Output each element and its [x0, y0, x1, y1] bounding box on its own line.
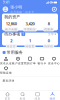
staticText: 可用积分: [24, 28, 36, 31]
button[interactable]: 账户设置: [12, 56, 24, 65]
button[interactable]: 消息: [30, 92, 45, 100]
button[interactable]: Settings: [51, 6, 57, 12]
staticText: 发现: [19, 97, 25, 100]
button[interactable]: 安全中心: [48, 56, 60, 65]
staticText: 账户余额: [5, 28, 17, 31]
button[interactable]: 首页: [0, 92, 15, 100]
staticText: 优惠券: [44, 28, 53, 31]
button[interactable]: 12,860: [2, 21, 21, 31]
staticText: 8: [48, 21, 50, 26]
button[interactable]: 全部: [48, 32, 56, 36]
staticText: 待评价: [44, 45, 53, 48]
staticText: 安全中心: [48, 62, 60, 65]
staticText: 3: [22, 32, 24, 36]
button[interactable]: 3,420: [21, 21, 39, 31]
staticText: 消息: [34, 97, 40, 100]
staticText: 3,420: [25, 21, 34, 26]
staticText: 全部: [48, 32, 54, 36]
button[interactable]: 0: [39, 38, 58, 48]
staticText: 张小明: [10, 5, 22, 9]
button[interactable]: 实名认证: [0, 56, 12, 65]
staticText: 0: [48, 38, 50, 43]
staticText: 我的订单: [24, 62, 36, 65]
staticText: 实名认证: [0, 62, 12, 65]
staticText: 最近活动: [3, 79, 15, 82]
button[interactable]: 2: [2, 38, 21, 48]
staticText: 银行卡: [37, 62, 46, 65]
staticText: 帮助反馈: [0, 71, 12, 75]
staticText: 12,860: [6, 21, 17, 26]
button[interactable]: 帮助反馈: [0, 66, 12, 75]
staticText: 常用服务: [7, 50, 23, 55]
button[interactable]: 8: [39, 21, 58, 31]
staticText: 1: [29, 38, 31, 43]
staticText: 待办事项: [4, 32, 20, 36]
button[interactable]: 我的订单: [24, 56, 36, 65]
staticText: 2: [10, 38, 12, 43]
staticText: 待支付: [7, 45, 16, 48]
button[interactable]: 1: [21, 38, 39, 48]
staticText: 会员等级 · 白金卡: [10, 10, 34, 14]
staticText: 我的: [49, 97, 55, 100]
staticText: 待收货: [25, 45, 34, 48]
staticText: 我的资产: [4, 14, 20, 19]
staticText: 首页: [4, 97, 10, 100]
button[interactable]: 银行卡: [36, 56, 48, 65]
button[interactable]: 我的: [45, 92, 60, 100]
button[interactable]: 发现: [15, 92, 30, 100]
staticText: 9:41: [3, 1, 10, 4]
staticText: 账户设置: [12, 62, 24, 65]
